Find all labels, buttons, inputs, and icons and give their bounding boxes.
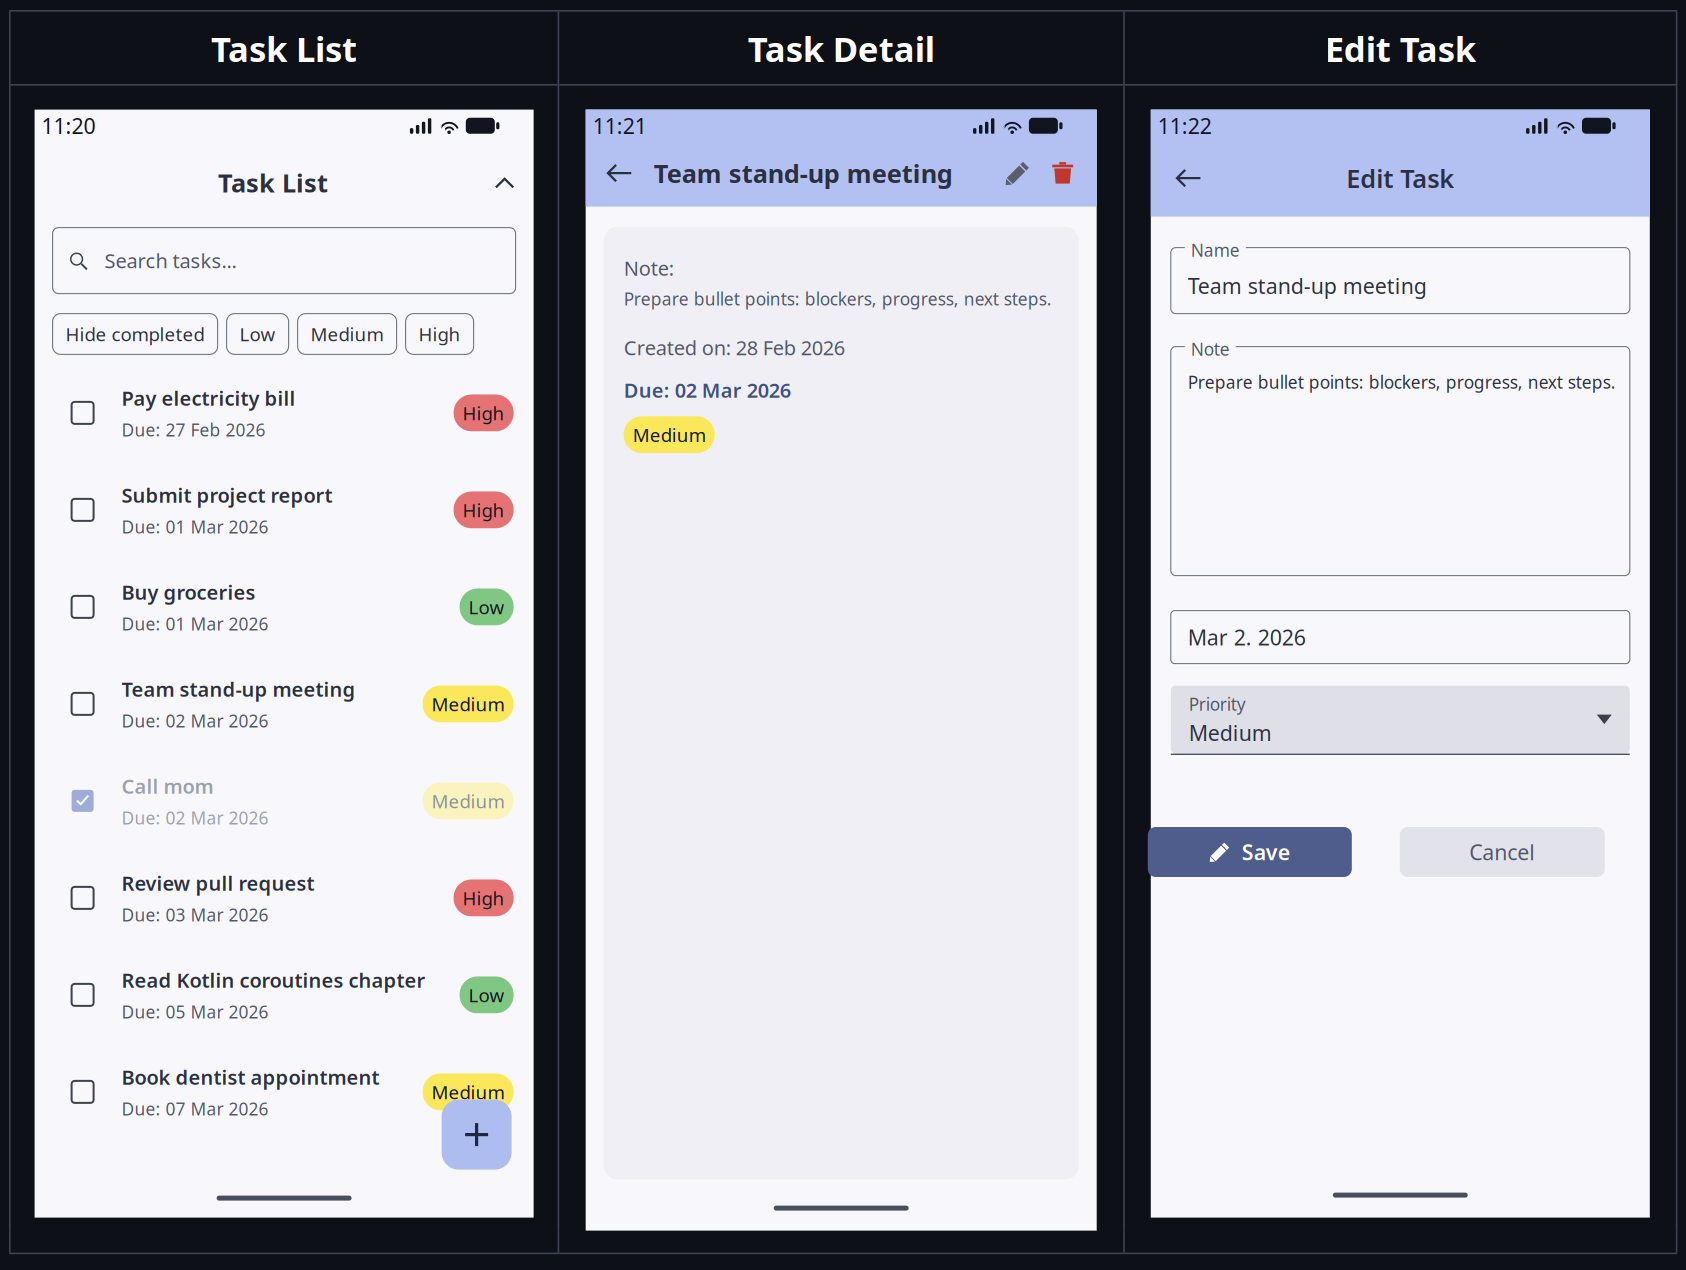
staticText: Team stand-up meeting <box>654 156 953 190</box>
staticText: Due: 01 Mar 2026 <box>122 612 269 635</box>
staticText: Hide completed <box>66 322 205 346</box>
staticText: Team stand-up meeting <box>1188 272 1427 300</box>
button[interactable]: Back <box>1165 151 1211 205</box>
button[interactable]: Search tasks... <box>53 228 516 294</box>
button[interactable]: Save <box>1148 827 1352 877</box>
button[interactable]: Medium <box>298 314 397 354</box>
staticText: 11:20 <box>42 112 96 140</box>
staticText: Edit Task <box>1346 161 1454 195</box>
button[interactable]: Buy groceries <box>35 558 534 655</box>
staticText: Due: 02 Mar 2026 <box>624 377 791 403</box>
button[interactable]: Prepare bullet points: blockers, progres… <box>1171 347 1630 576</box>
staticText: Due: 05 Mar 2026 <box>122 1000 269 1023</box>
staticText: Medium <box>432 1079 505 1104</box>
staticText: Edit Task <box>1325 26 1476 72</box>
staticText: Review pull request <box>122 870 315 896</box>
button[interactable]: Mar 2. 2026 <box>1171 611 1630 664</box>
staticText: Call mom <box>122 773 214 799</box>
button[interactable]: Task List <box>35 154 534 212</box>
staticText: Task Detail <box>748 26 935 72</box>
staticText: Low <box>469 594 505 619</box>
staticText: Task List <box>218 166 328 199</box>
staticText: Note: <box>624 255 674 281</box>
button[interactable]: Back <box>598 148 640 198</box>
staticText: Medium <box>432 788 505 813</box>
staticText: Prepare bullet points: blockers, progres… <box>1188 371 1616 394</box>
staticText: High <box>463 400 505 425</box>
staticText: Buy groceries <box>122 579 256 605</box>
button[interactable]: Pay electricity bill <box>35 364 534 461</box>
staticText: Due: 27 Feb 2026 <box>122 418 266 441</box>
button[interactable]: Low <box>227 314 289 354</box>
staticText: 11:21 <box>593 112 647 140</box>
staticText: Medium <box>1189 718 1272 747</box>
staticText: Due: 02 Mar 2026 <box>122 709 269 732</box>
staticText: Created on: 28 Feb 2026 <box>624 334 845 361</box>
staticText: Medium <box>311 322 384 346</box>
button[interactable]: Hide completed <box>53 314 218 354</box>
staticText: Save <box>1242 838 1290 866</box>
staticText: Pay electricity bill <box>122 385 296 411</box>
staticText: Priority <box>1189 692 1246 715</box>
button[interactable]: Submit project report <box>35 461 534 558</box>
button[interactable]: Priority <box>1171 686 1630 755</box>
staticText: Name <box>1191 239 1240 262</box>
staticText: Team stand-up meeting <box>122 676 356 702</box>
button[interactable]: High <box>406 314 474 354</box>
button[interactable]: Edit <box>995 147 1041 199</box>
staticText: Book dentist appointment <box>122 1064 380 1090</box>
staticText: Task List <box>211 26 357 72</box>
button[interactable]: Call mom <box>35 752 534 849</box>
button[interactable]: Book dentist appointment <box>35 1043 534 1140</box>
staticText: Note <box>1191 338 1230 361</box>
staticText: Prepare bullet points: blockers, progres… <box>624 287 1052 310</box>
button[interactable]: Review pull request <box>35 849 534 946</box>
staticText: Due: 01 Mar 2026 <box>122 515 269 538</box>
button[interactable]: Read Kotlin coroutines chapter <box>35 946 534 1043</box>
staticText: 11:22 <box>1158 112 1212 140</box>
staticText: Read Kotlin coroutines chapter <box>122 967 426 993</box>
staticText: Submit project report <box>122 482 333 508</box>
staticText: Due: 02 Mar 2026 <box>122 806 269 829</box>
staticText: Due: 03 Mar 2026 <box>122 903 269 926</box>
staticText: High <box>463 885 505 910</box>
staticText: Low <box>240 322 276 346</box>
staticText: Mar 2. 2026 <box>1188 623 1306 651</box>
staticText: Low <box>469 982 505 1007</box>
button[interactable]: Add task <box>442 1100 512 1170</box>
staticText: Medium <box>633 422 706 447</box>
staticText: Due: 07 Mar 2026 <box>122 1097 269 1120</box>
staticText: High <box>463 497 505 522</box>
staticText: Medium <box>432 691 505 716</box>
staticText: Cancel <box>1469 838 1535 866</box>
button[interactable]: Delete <box>1041 149 1085 197</box>
button[interactable]: Team stand-up meeting <box>1171 248 1630 314</box>
staticText: Search tasks... <box>105 247 237 274</box>
staticText: High <box>419 322 461 346</box>
button[interactable]: Cancel <box>1400 827 1605 877</box>
button[interactable]: Team stand-up meeting <box>35 655 534 752</box>
